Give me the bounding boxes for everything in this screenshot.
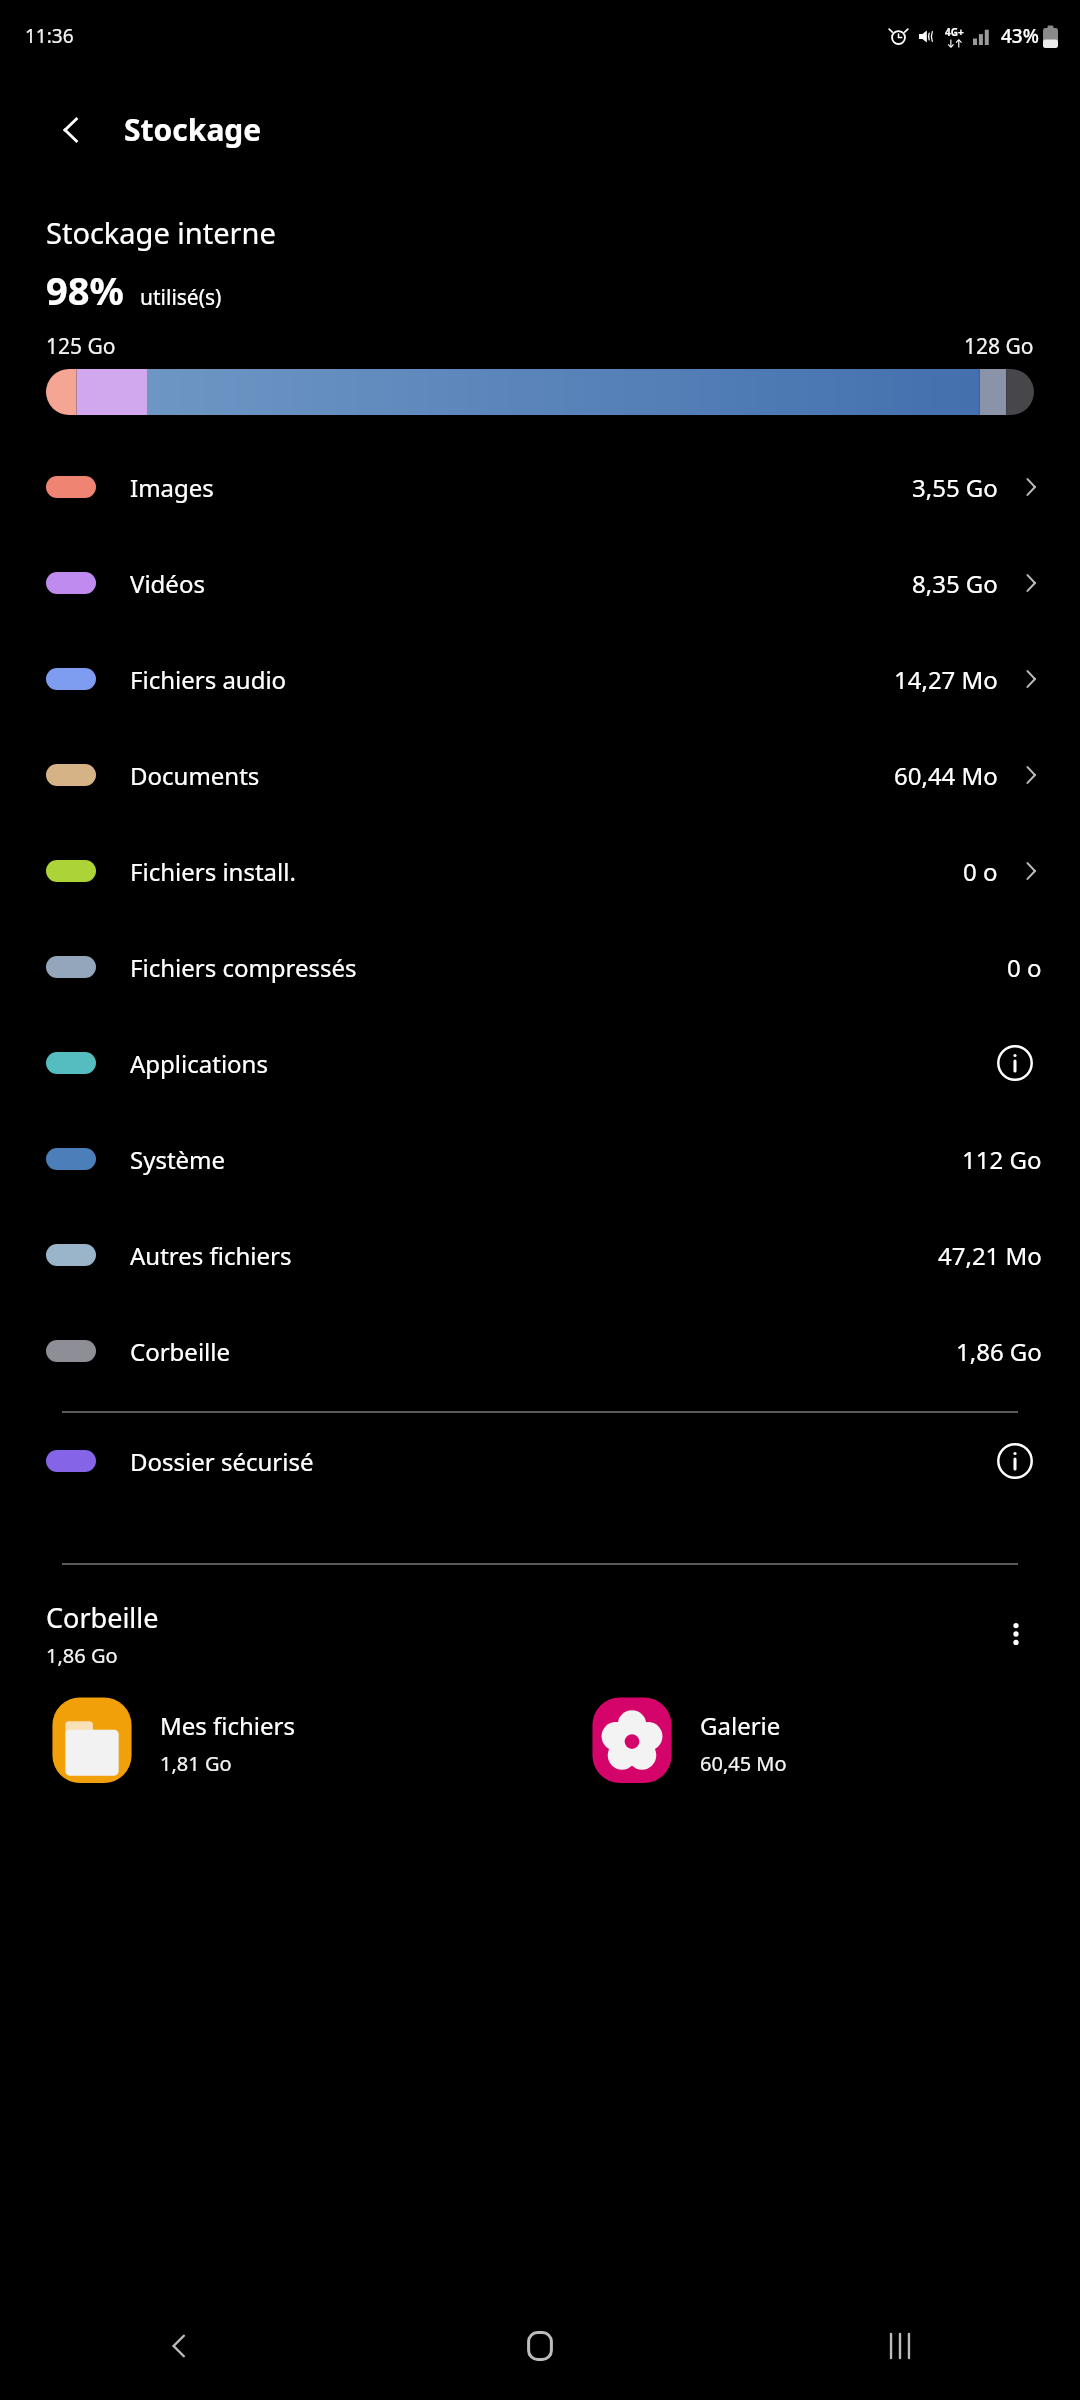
staticText: utilisé(s) (140, 283, 222, 312)
staticText: 1,86 Go (46, 1642, 118, 1669)
button[interactable]: Informations (988, 1434, 1042, 1488)
staticText: 8,35 Go (912, 567, 998, 600)
button[interactable]: Mes fichiers (0, 1691, 540, 1783)
staticText: Fichiers audio (130, 663, 287, 696)
staticText: Stockage (124, 109, 262, 150)
staticText: Dossier sécurisé (130, 1445, 314, 1478)
staticText: 43% (1001, 23, 1039, 49)
button[interactable]: Retour (44, 103, 98, 157)
staticText: 128 Go (964, 332, 1034, 361)
button[interactable]: Vidéos (0, 535, 1080, 631)
button[interactable]: Dossier sécurisé (0, 1413, 1080, 1509)
staticText: 3,55 Go (912, 471, 998, 504)
staticText: Mes fichiers (160, 1709, 295, 1742)
staticText: Images (130, 471, 214, 504)
button[interactable]: Autres fichiers (0, 1207, 1080, 1303)
staticText: Vidéos (130, 567, 205, 600)
staticText: Documents (130, 759, 260, 792)
staticText: 60,45 Mo (700, 1750, 787, 1777)
button[interactable]: Corbeille (0, 1303, 1080, 1399)
button[interactable]: Corbeille (46, 1599, 990, 1669)
button[interactable]: Fichiers install. (0, 823, 1080, 919)
staticText: 98% (46, 264, 124, 316)
staticText: Stockage interne (46, 213, 276, 252)
staticText: 14,27 Mo (894, 663, 998, 696)
staticText: 4G+ (945, 25, 964, 39)
button[interactable]: Fichiers audio (0, 631, 1080, 727)
button[interactable]: Plus d'options (990, 1608, 1042, 1660)
button[interactable]: Applications récentes (720, 2292, 1080, 2400)
button[interactable]: Fichiers compressés (0, 919, 1080, 1015)
staticText: Autres fichiers (130, 1239, 292, 1272)
staticText: 125 Go (46, 332, 116, 361)
staticText: Galerie (700, 1709, 781, 1742)
staticText: 11:36 (25, 23, 74, 49)
button[interactable]: Applications (0, 1015, 1080, 1111)
button[interactable]: Documents (0, 727, 1080, 823)
button[interactable]: Informations (988, 1036, 1042, 1090)
staticText: 112 Go (962, 1143, 1042, 1176)
staticText: Corbeille (130, 1335, 231, 1368)
staticText: 0 o (1007, 951, 1042, 984)
staticText: 1,86 Go (956, 1335, 1042, 1368)
staticText: Fichiers install. (130, 855, 296, 888)
staticText: 0 o (963, 855, 998, 888)
button[interactable]: Galerie (540, 1691, 1080, 1783)
button[interactable]: Système (0, 1111, 1080, 1207)
staticText: 60,44 Mo (894, 759, 998, 792)
button[interactable]: Retour (0, 2292, 360, 2400)
staticText: 47,21 Mo (938, 1239, 1042, 1272)
staticText: Applications (130, 1047, 268, 1080)
staticText: 1,81 Go (160, 1750, 232, 1777)
staticText: Corbeille (46, 1599, 159, 1636)
button[interactable]: Accueil (360, 2292, 720, 2400)
button[interactable]: Images (0, 439, 1080, 535)
staticText: Fichiers compressés (130, 951, 357, 984)
staticText: Système (130, 1143, 226, 1176)
